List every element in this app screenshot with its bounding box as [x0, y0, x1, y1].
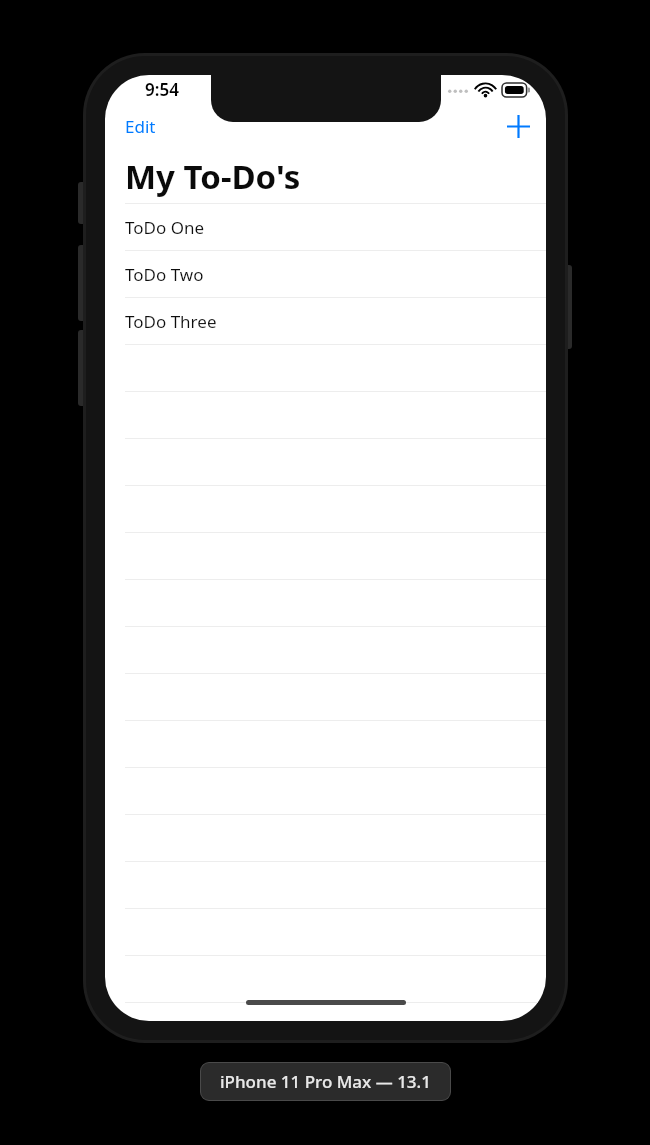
button[interactable]: ToDo Two: [105, 251, 546, 297]
staticText: ToDo One: [125, 216, 205, 239]
staticText: Edit: [125, 115, 156, 138]
staticText: iPhone 11 Pro Max — 13.1: [220, 1070, 431, 1093]
button[interactable]: ToDo One: [105, 204, 546, 250]
button[interactable]: ToDo Three: [105, 298, 546, 344]
staticText: ToDo Three: [125, 310, 217, 333]
button[interactable]: Edit: [105, 109, 168, 144]
staticText: My To-Do's: [125, 154, 301, 199]
button[interactable]: Add to-do: [491, 107, 546, 146]
staticText: ToDo Two: [125, 263, 204, 286]
staticText: 9:54: [145, 78, 179, 101]
